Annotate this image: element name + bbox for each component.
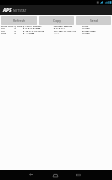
button[interactable]: Recent apps: [71, 170, 86, 180]
staticText: NETSTAT: [13, 8, 27, 12]
button[interactable]: Copy: [39, 16, 74, 25]
button[interactable]: Back: [24, 170, 38, 180]
staticText: Proto Recv-Q Send-Q Local Address Foreig…: [1, 25, 89, 28]
button[interactable]: Refresh: [1, 16, 37, 25]
button[interactable]: Send: [76, 16, 111, 25]
staticText: APS: [3, 7, 12, 13]
staticText: Send: [90, 18, 98, 23]
staticText: Refresh: [13, 18, 26, 23]
staticText: Copy: [53, 18, 61, 23]
button[interactable]: Home: [48, 170, 63, 180]
staticText: tcp 0 0 10.0.2.15:43210 142.250.74.206:4…: [1, 30, 96, 33]
staticText: tcp 0 0 0.0.0.0:5555 0.0.0.0:* LISTEN: [1, 27, 90, 30]
staticText: tcp6 0 0 :::5555 :::* LISTEN: [1, 32, 90, 35]
